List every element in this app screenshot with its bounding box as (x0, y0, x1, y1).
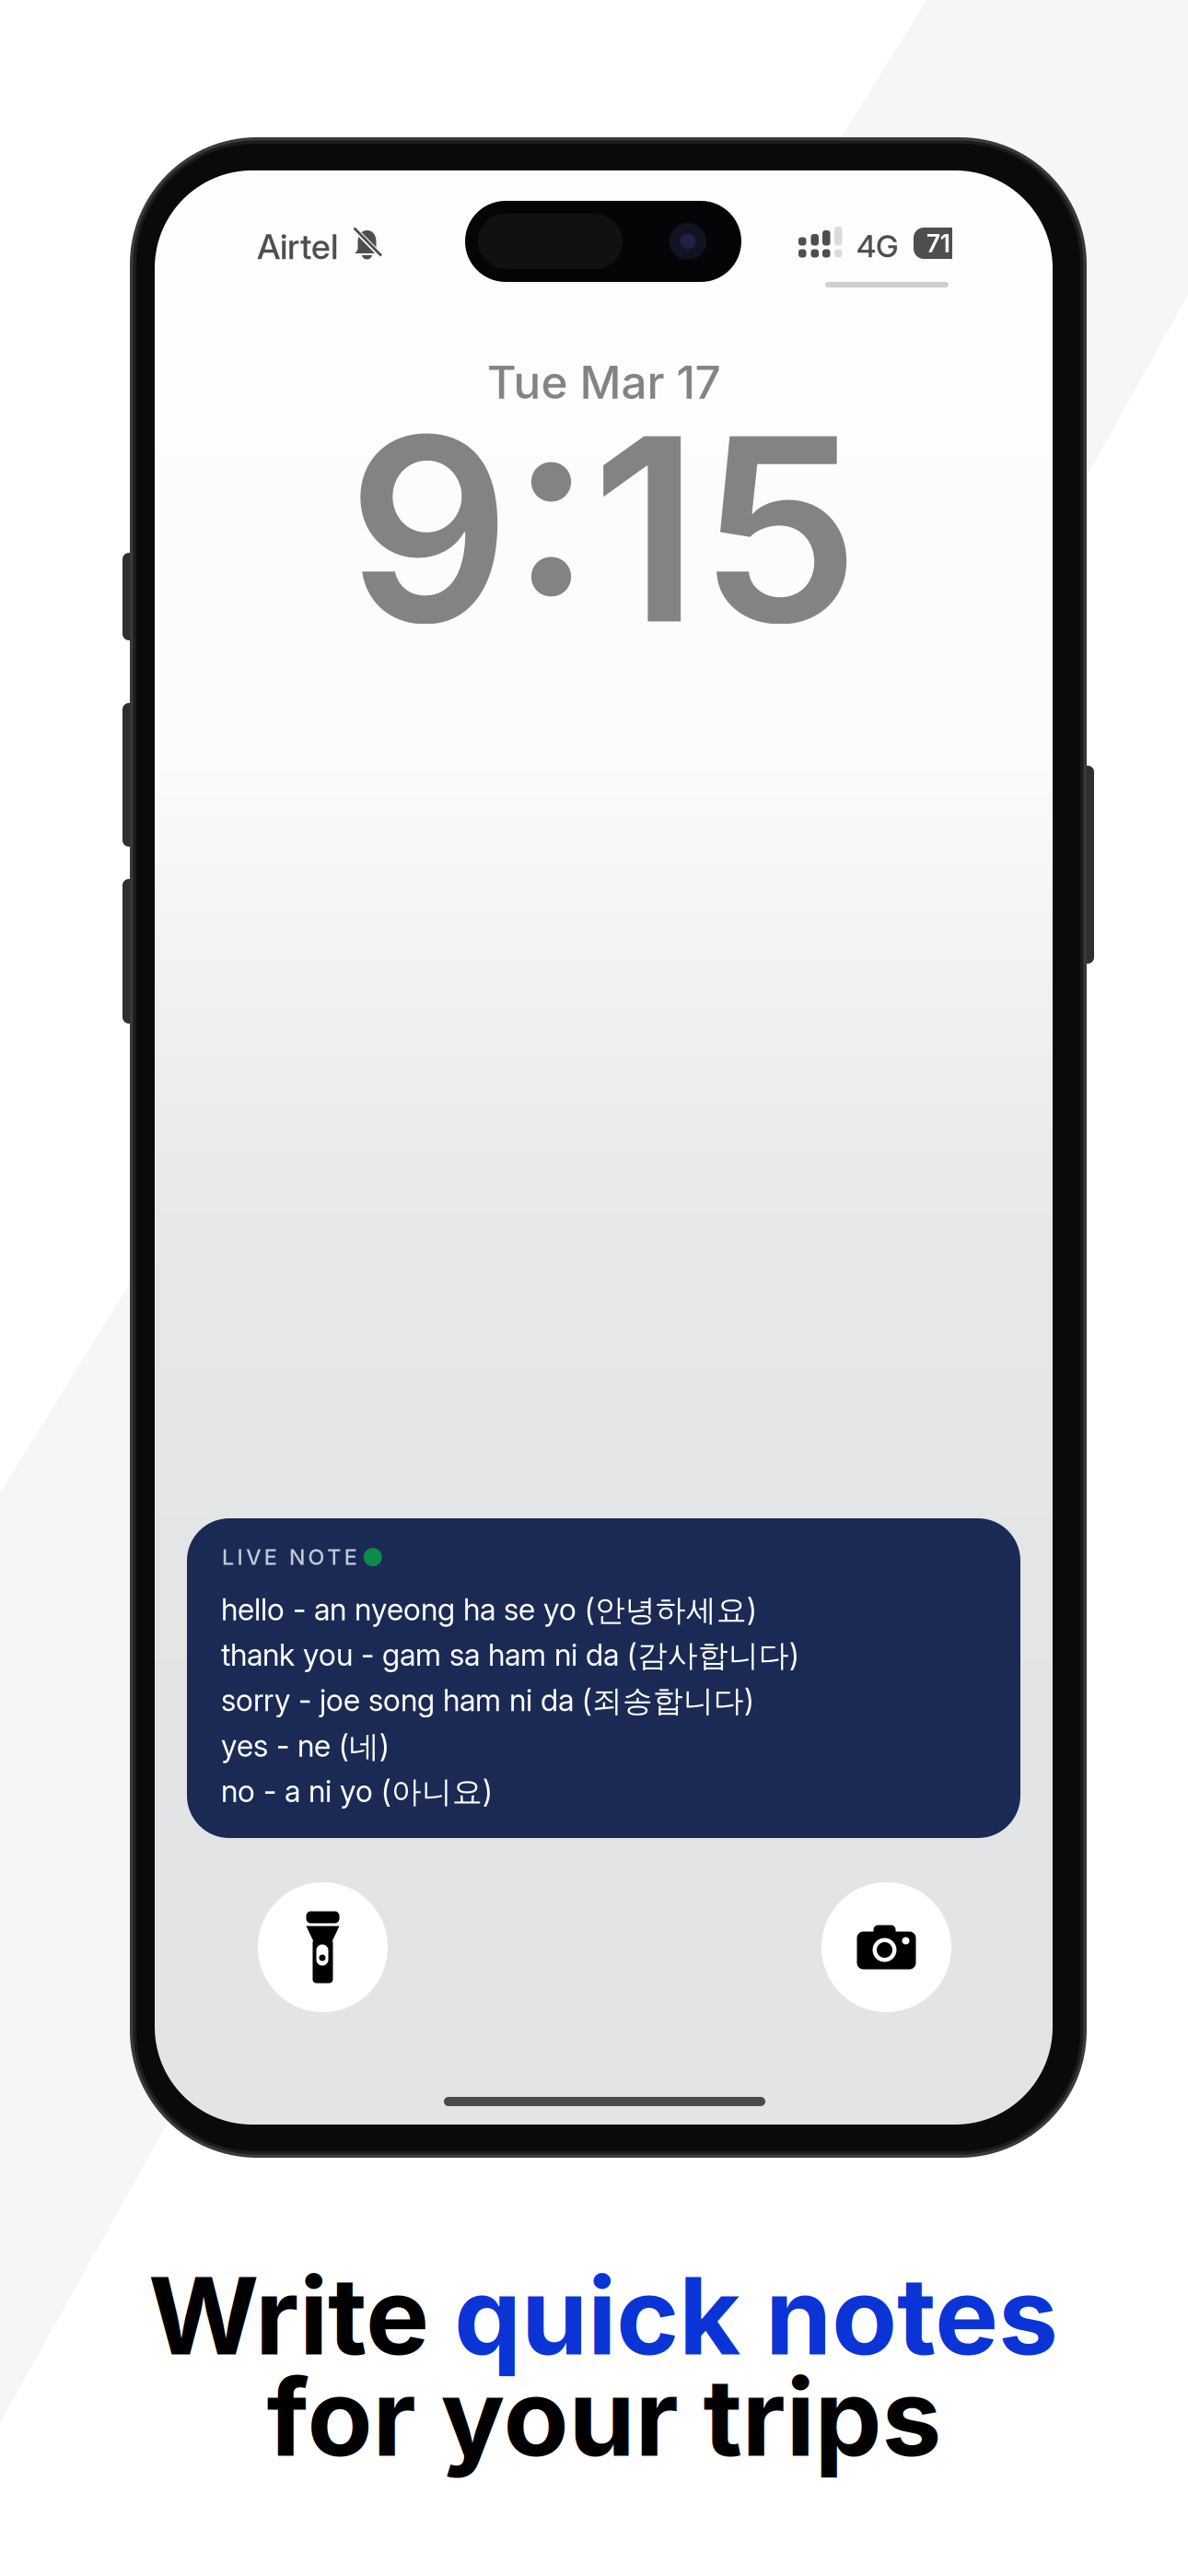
staticText: yes - ne (네) (221, 1727, 390, 1766)
staticText: Tue Mar 17 (487, 355, 721, 410)
button[interactable]: Camera (821, 1882, 951, 2012)
button[interactable]: Flashlight (258, 1882, 388, 2012)
staticText: Write (148, 2251, 454, 2380)
staticText: Airtel (257, 226, 338, 267)
staticText: for your trips (267, 2352, 942, 2481)
staticText: no - a ni yo (아니요) (221, 1773, 493, 1811)
staticText: 4G (856, 228, 899, 265)
staticText: quick notes (454, 2251, 1058, 2380)
staticText: hello - an nyeong ha se yo (안녕하세요) (221, 1591, 757, 1629)
staticText: LIVE NOTE (222, 1544, 357, 1570)
staticText: 9:15 (348, 375, 860, 683)
staticText: thank you - gam sa ham ni da (감사합니다) (221, 1637, 799, 1675)
staticText: 71 (926, 228, 950, 258)
staticText: sorry - joe song ham ni da (죄송합니다) (221, 1682, 754, 1720)
